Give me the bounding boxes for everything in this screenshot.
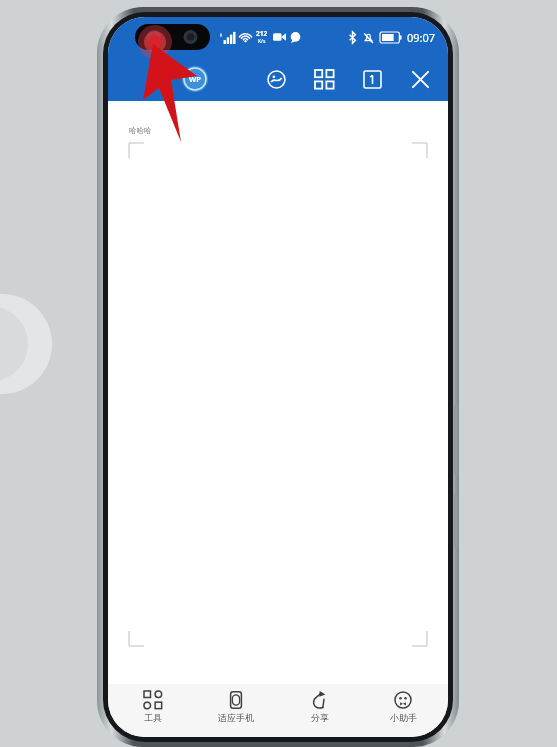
staticText: 哈哈哈 (129, 126, 152, 135)
button[interactable]: WPS (182, 66, 208, 92)
button[interactable]: 工具 (114, 684, 192, 737)
staticText: WP (189, 74, 201, 84)
staticText: 分享 (311, 712, 329, 723)
button[interactable]: Close (405, 64, 435, 94)
button[interactable]: Page count (357, 64, 387, 94)
button[interactable]: 小助手 (364, 684, 442, 737)
staticText: 小助手 (390, 712, 417, 723)
staticText: K/s (258, 38, 266, 45)
button[interactable]: 适应手机 (197, 684, 275, 737)
button[interactable]: Back (116, 63, 174, 95)
staticText: 09:07 (407, 30, 436, 45)
staticText: 工具 (144, 712, 162, 723)
staticText: 212 (256, 29, 268, 38)
button[interactable]: Read mode (261, 64, 291, 94)
button[interactable]: Grid view (309, 64, 339, 94)
staticText: 适应手机 (218, 712, 254, 723)
button[interactable]: 分享 (281, 684, 359, 737)
